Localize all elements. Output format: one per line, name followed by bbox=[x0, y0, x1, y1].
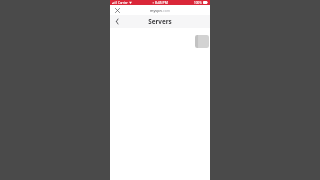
button[interactable]: Back bbox=[112, 16, 121, 26]
staticText: Servers bbox=[148, 17, 172, 26]
staticText: 8:45 PM bbox=[155, 0, 168, 5]
staticText: 100% bbox=[194, 1, 202, 5]
button[interactable]: Image placeholder bbox=[195, 35, 209, 48]
staticText: myvpn bbox=[150, 8, 162, 13]
staticText: Carrier bbox=[118, 1, 128, 5]
button[interactable]: Close bbox=[113, 6, 121, 15]
staticText: .com bbox=[162, 8, 171, 13]
